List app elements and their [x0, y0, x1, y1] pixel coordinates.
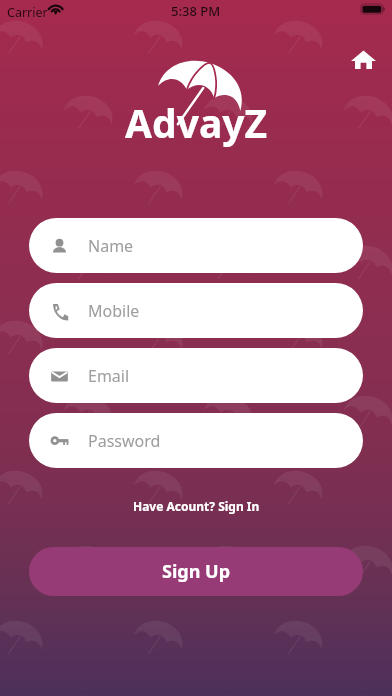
- staticText: Mobile: [88, 300, 140, 322]
- button[interactable]: Mobile: [29, 283, 363, 338]
- button[interactable]: Have Acount? Sign In: [123, 493, 270, 519]
- staticText: Name: [88, 235, 134, 257]
- staticText: 5:38 PM: [171, 2, 221, 20]
- button[interactable]: Home: [346, 42, 380, 76]
- staticText: Have Acount? Sign In: [133, 498, 260, 514]
- staticText: AdvayZ: [125, 96, 268, 149]
- button[interactable]: Name: [29, 218, 363, 273]
- staticText: Password: [88, 430, 161, 452]
- button[interactable]: Email: [29, 348, 363, 403]
- button[interactable]: Sign Up: [29, 547, 363, 596]
- button[interactable]: Password: [29, 413, 363, 468]
- staticText: Email: [88, 365, 130, 387]
- staticText: Carrier: [7, 4, 48, 21]
- staticText: Sign Up: [162, 559, 231, 584]
